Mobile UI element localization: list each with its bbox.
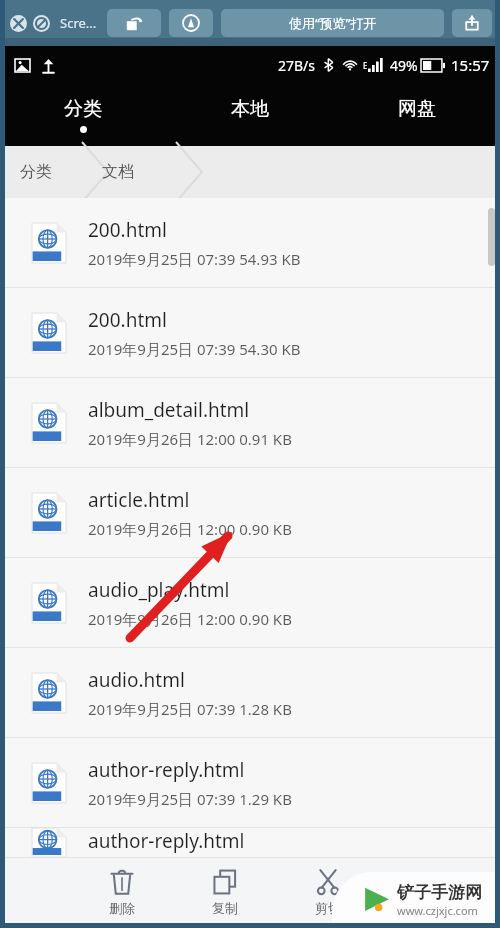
- staticText: 15:57: [451, 55, 490, 75]
- staticText: 27B/s: [278, 56, 316, 75]
- staticText: audio.html: [88, 667, 185, 693]
- staticText: 使用“预览”打开: [289, 14, 377, 32]
- staticText: 2019年9月25日 07:39 54.30 KB: [88, 339, 301, 359]
- staticText: author-reply.html: [88, 828, 245, 854]
- button[interactable]: 分类: [0, 84, 166, 146]
- button[interactable]: 剪切: [276, 857, 379, 928]
- button[interactable]: audio.html: [0, 648, 500, 737]
- staticText: 2019年9月25日 07:39 54.93 KB: [88, 249, 301, 269]
- staticText: 删除: [109, 900, 135, 916]
- button[interactable]: article.html: [0, 468, 500, 557]
- button[interactable]: 200.html: [0, 198, 500, 287]
- staticText: author-reply.html: [88, 757, 245, 783]
- button[interactable]: 使用“预览”打开: [221, 9, 444, 37]
- button[interactable]: author-reply.html: [0, 828, 500, 857]
- staticText: E: [363, 60, 368, 71]
- staticText: 复制: [212, 900, 238, 916]
- staticText: 2019年9月25日 07:39 1.28 KB: [88, 699, 292, 719]
- staticText: 分类: [20, 162, 52, 182]
- staticText: 网盘: [398, 97, 436, 121]
- button[interactable]: 复制: [173, 857, 276, 928]
- staticText: album_detail.html: [88, 397, 250, 423]
- button[interactable]: More: [379, 857, 482, 928]
- button[interactable]: 文档: [102, 162, 134, 182]
- button[interactable]: 本地: [166, 84, 333, 146]
- button[interactable]: Toolbar action: [452, 9, 492, 37]
- staticText: article.html: [88, 487, 190, 513]
- button[interactable]: 分类: [20, 162, 52, 182]
- button[interactable]: audio_play.html: [0, 558, 500, 647]
- button[interactable]: 200.html: [0, 288, 500, 377]
- staticText: 2019年9月26日 12:00 0.90 KB: [88, 609, 292, 629]
- staticText: 2019年9月26日 12:00 0.91 KB: [88, 429, 292, 449]
- button[interactable]: album_detail.html: [0, 378, 500, 467]
- staticText: 本地: [231, 97, 269, 121]
- button[interactable]: 网盘: [333, 84, 500, 146]
- staticText: audio_play.html: [88, 577, 230, 603]
- staticText: 铲子手游网: [397, 882, 482, 903]
- button[interactable]: Toolbar action: [107, 9, 161, 37]
- staticText: 200.html: [88, 217, 167, 243]
- button[interactable]: Close: [10, 15, 27, 32]
- staticText: Scre...: [60, 14, 97, 32]
- staticText: 49%: [390, 56, 418, 75]
- staticText: 2019年9月25日 07:39 1.29 KB: [88, 789, 292, 809]
- staticText: www.czjxjc.com: [397, 903, 478, 918]
- button[interactable]: Toolbar action: [169, 9, 213, 37]
- staticText: 剪切: [315, 900, 341, 916]
- button[interactable]: 删除: [70, 857, 173, 928]
- staticText: 200.html: [88, 307, 167, 333]
- button[interactable]: Block: [33, 15, 50, 32]
- button[interactable]: author-reply.html: [0, 738, 500, 827]
- staticText: 2019年9月26日 12:00 0.90 KB: [88, 519, 292, 539]
- staticText: 分类: [64, 97, 102, 121]
- staticText: 文档: [102, 162, 134, 182]
